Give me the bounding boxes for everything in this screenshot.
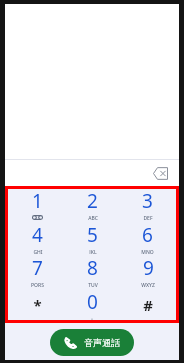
button[interactable]: * (9, 289, 65, 321)
button[interactable]: 7 (9, 255, 65, 287)
staticText: 5 (87, 222, 98, 248)
staticText: 4 (32, 222, 43, 248)
staticText: 9 (143, 255, 154, 281)
staticText: 2 (87, 188, 98, 214)
button[interactable]: 2 (65, 188, 120, 220)
button[interactable]: 5 (65, 222, 120, 254)
button[interactable]: 1 (9, 188, 65, 220)
button[interactable]: Backspace (147, 160, 173, 186)
button[interactable]: 6 (120, 222, 175, 254)
staticText: # (143, 295, 153, 315)
staticText: 7 (32, 255, 43, 281)
button[interactable]: 8 (65, 255, 120, 287)
staticText: ABC (88, 215, 98, 220)
staticText: 8 (87, 255, 98, 281)
staticText: MNO (141, 249, 154, 254)
button[interactable]: 9 (120, 255, 175, 287)
staticText: JKL (89, 249, 97, 254)
staticText: 3 (142, 188, 153, 214)
staticText: GHI (33, 249, 43, 254)
staticText: TUV (88, 282, 98, 287)
staticText: DEF (143, 215, 153, 220)
staticText: 6 (142, 222, 153, 248)
staticText: 0 (87, 289, 98, 315)
staticText: 音声通話 (84, 337, 120, 348)
button[interactable]: 音声通話 (50, 329, 134, 356)
staticText: WXYZ (141, 282, 155, 287)
button[interactable]: 0 (65, 289, 120, 321)
staticText: PQRS (31, 282, 44, 287)
staticText: * (33, 295, 42, 315)
button[interactable]: # (120, 289, 175, 321)
staticText: + (90, 316, 95, 321)
button[interactable]: 3 (120, 188, 175, 220)
staticText: 1 (32, 188, 43, 214)
button[interactable]: 4 (9, 222, 65, 254)
